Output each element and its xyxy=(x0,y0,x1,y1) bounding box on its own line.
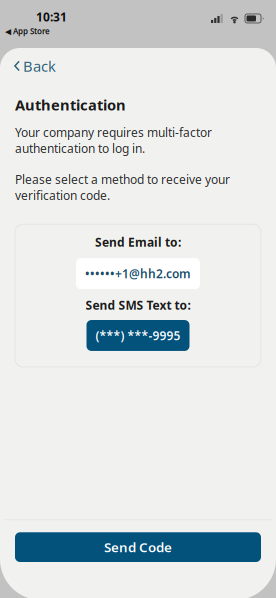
staticText: Send Email to: xyxy=(95,234,181,250)
staticText: Send SMS Text to: xyxy=(85,297,190,313)
staticText: ◀ App Store xyxy=(5,26,50,36)
button[interactable]: Send Code xyxy=(15,532,261,562)
staticText: Authentication xyxy=(15,95,126,114)
staticText: ••••••+1@hh2.com xyxy=(85,266,191,282)
staticText: Please select a method to receive your v… xyxy=(15,171,230,203)
staticText: Send Code xyxy=(104,538,172,556)
staticText: (***) ***-9995 xyxy=(95,327,180,343)
staticText: Back xyxy=(23,56,56,76)
button[interactable]: (***) ***-9995 xyxy=(86,320,189,351)
staticText: 10:31 xyxy=(36,9,67,25)
staticText: Your company requires multi-factor authe… xyxy=(15,124,212,156)
button[interactable]: Back xyxy=(0,50,66,82)
button[interactable]: ••••••+1@hh2.com xyxy=(76,258,200,289)
